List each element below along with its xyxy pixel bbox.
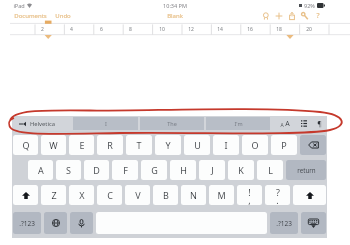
staticText: 18: [276, 26, 282, 33]
button[interactable]: A: [28, 160, 53, 180]
staticText: 4: [70, 26, 73, 33]
staticText: I: [105, 120, 107, 127]
staticText: ¶: [317, 119, 322, 129]
staticText: .?123: [19, 219, 35, 228]
staticText: Documents: [14, 12, 47, 20]
button[interactable]: Hide keyboard: [301, 212, 326, 234]
staticText: R: [107, 139, 113, 151]
button[interactable]: Z: [41, 185, 66, 205]
button[interactable]: N: [181, 185, 206, 205]
button[interactable]: F: [112, 160, 138, 180]
staticText: C: [107, 189, 113, 201]
button[interactable]: O: [242, 135, 268, 155]
staticText: F: [123, 164, 128, 176]
button[interactable]: Tools: [298, 10, 311, 21]
staticText: H: [180, 164, 187, 176]
staticText: return: [297, 166, 316, 174]
staticText: E: [79, 139, 85, 151]
button[interactable]: K: [228, 160, 254, 180]
staticText: U: [194, 139, 201, 151]
button[interactable]: W: [41, 135, 66, 155]
button[interactable]: V: [125, 185, 150, 205]
button[interactable]: H: [170, 160, 196, 180]
staticText: 16: [247, 26, 253, 33]
button[interactable]: C: [97, 185, 122, 205]
button[interactable]: Switch keyboard: [44, 212, 67, 234]
button[interactable]: I'm: [206, 117, 270, 130]
staticText: J: [211, 164, 214, 176]
button[interactable]: S: [56, 160, 81, 180]
staticText: 20: [306, 26, 312, 33]
button[interactable]: L: [257, 160, 283, 180]
button[interactable]: Insert: [272, 10, 285, 21]
staticText: Undo: [55, 12, 71, 20]
button[interactable]: Q: [13, 135, 38, 155]
button[interactable]: Text size: [276, 116, 294, 131]
staticText: iPad: [13, 2, 25, 9]
staticText: W: [49, 139, 58, 151]
button[interactable]: Lists: [297, 116, 310, 131]
button[interactable]: P: [271, 135, 297, 155]
staticText: B: [163, 189, 169, 201]
staticText: T: [136, 139, 142, 151]
staticText: Helvetica: [30, 120, 55, 128]
button[interactable]: Help: [311, 10, 324, 21]
button[interactable]: G: [141, 160, 167, 180]
button[interactable]: D: [84, 160, 109, 180]
staticText: ?: [316, 11, 320, 21]
staticText: Q: [22, 139, 30, 151]
staticText: I'm: [234, 120, 243, 127]
staticText: D: [93, 164, 100, 176]
staticText: O: [251, 139, 259, 151]
staticText: X: [79, 189, 85, 201]
button[interactable]: Shift: [13, 185, 38, 205]
button[interactable]: return: [286, 160, 326, 180]
button[interactable]: J: [199, 160, 225, 180]
button[interactable]: Search: [259, 10, 272, 21]
staticText: 8: [129, 26, 132, 33]
staticText: 12: [188, 26, 194, 33]
button[interactable]: Paragraph marks: [313, 116, 326, 131]
button[interactable]: E: [69, 135, 94, 155]
button[interactable]: !: [237, 185, 262, 205]
staticText: A: [38, 164, 44, 176]
staticText: Z: [51, 189, 57, 201]
staticText: I: [224, 139, 228, 151]
button[interactable]: R: [97, 135, 123, 155]
button[interactable]: U: [184, 135, 210, 155]
button[interactable]: Backspace: [300, 135, 326, 155]
button[interactable]: Shift: [293, 185, 326, 205]
staticText: M: [217, 189, 226, 201]
staticText: K: [238, 164, 244, 176]
staticText: .?123: [276, 219, 292, 228]
staticText: V: [135, 189, 141, 201]
button[interactable]: .?123: [13, 212, 41, 234]
button[interactable]: T: [126, 135, 152, 155]
staticText: Y: [165, 139, 171, 151]
button[interactable]: M: [209, 185, 234, 205]
staticText: ?: [276, 186, 280, 198]
staticText: 92%: [304, 2, 315, 9]
button[interactable]: Y: [155, 135, 181, 155]
button[interactable]: The: [140, 117, 204, 130]
staticText: G: [151, 164, 158, 176]
staticText: !: [248, 186, 251, 198]
staticText: L: [268, 164, 273, 176]
button[interactable]: Documents: [13, 12, 48, 20]
button[interactable]: I: [213, 135, 239, 155]
button[interactable]: Share: [285, 10, 298, 21]
button[interactable]: B: [153, 185, 178, 205]
staticText: 2: [41, 26, 44, 33]
button[interactable]: Undo: [54, 12, 72, 20]
button[interactable]: X: [69, 185, 94, 205]
button[interactable]: Dictate: [70, 212, 93, 234]
button[interactable]: ?: [265, 185, 290, 205]
staticText: P: [281, 139, 287, 151]
staticText: 10: [159, 26, 165, 33]
staticText: 6: [100, 26, 103, 33]
button[interactable]: .?123: [270, 212, 298, 234]
staticText: .: [276, 194, 279, 205]
button[interactable]: Helvetica: [12, 116, 72, 131]
